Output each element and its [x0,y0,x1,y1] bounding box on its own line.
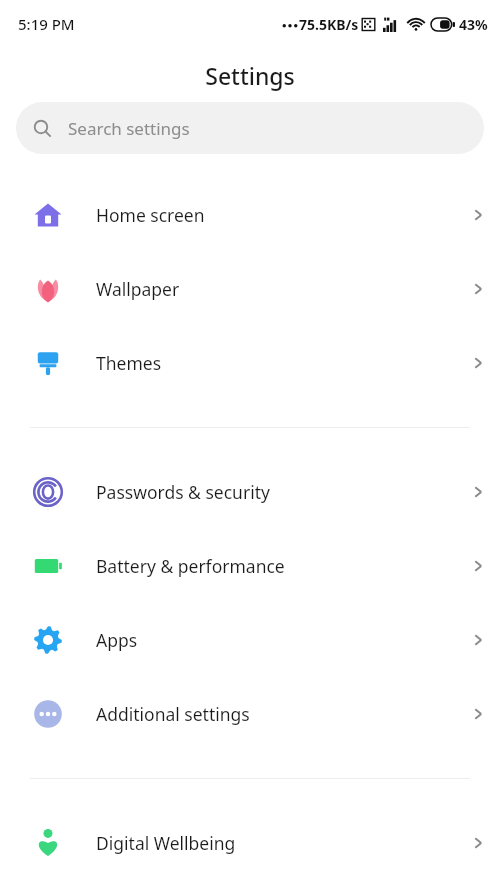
staticText: Settings [205,60,295,91]
button[interactable]: Digital Wellbeing [0,806,500,880]
staticText: Search settings [68,117,190,140]
staticText: 75.5KB/s [299,15,359,34]
staticText: Home screen [96,203,455,227]
button[interactable]: Wallpaper [0,252,500,326]
staticText: Additional settings [96,702,455,726]
staticText: Themes [96,351,455,375]
button[interactable]: Battery & performance [0,529,500,603]
button[interactable]: Additional settings [0,677,500,751]
staticText: 43% [459,15,488,34]
staticText: Wallpaper [96,277,455,301]
button[interactable]: Passwords & security [0,455,500,529]
button[interactable]: Home screen [0,178,500,252]
staticText: Battery & performance [96,554,455,578]
staticText: Passwords & security [96,480,455,504]
button[interactable]: Themes [0,326,500,400]
button[interactable]: Apps [0,603,500,677]
staticText: Apps [96,628,455,652]
staticText: Digital Wellbeing [96,831,455,855]
button[interactable]: Search settings [16,102,484,154]
staticText: 5:19 PM [18,14,75,34]
